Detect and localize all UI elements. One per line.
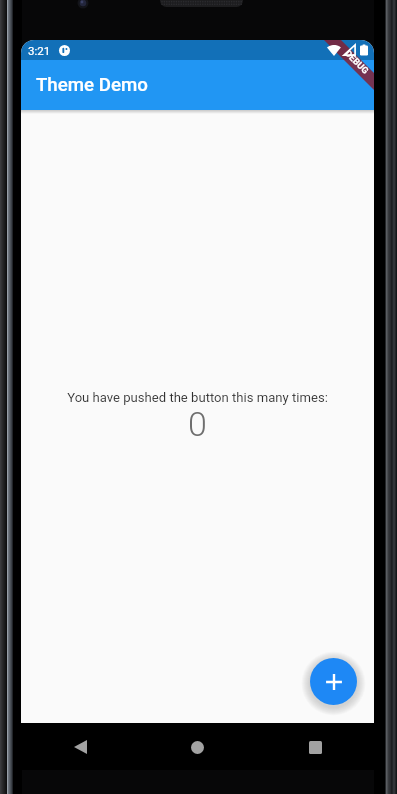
button[interactable]: Increment <box>310 658 357 705</box>
button[interactable]: Home <box>176 726 218 768</box>
staticText: You have pushed the button this many tim… <box>67 390 328 405</box>
staticText: DEBUG <box>342 48 371 77</box>
staticText: 0 <box>188 404 207 444</box>
staticText: 3:21 <box>28 44 51 57</box>
button[interactable]: Back <box>59 726 101 768</box>
button[interactable]: Recents <box>294 726 336 768</box>
staticText: Theme Demo <box>36 74 148 96</box>
